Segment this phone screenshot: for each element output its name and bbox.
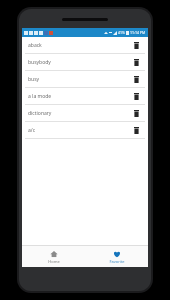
- staticText: aback: [28, 42, 131, 49]
- staticText: a la mode: [28, 93, 131, 100]
- button[interactable]: Delete a la mode: [131, 91, 142, 102]
- button[interactable]: busybody: [22, 54, 148, 70]
- button[interactable]: a la mode: [22, 88, 148, 104]
- staticText: 11:14 PM: [130, 30, 146, 35]
- staticText: Favorite: [109, 259, 125, 264]
- button[interactable]: busy: [22, 71, 148, 87]
- staticText: 41%: [118, 30, 125, 35]
- staticText: busybody: [28, 59, 131, 66]
- button[interactable]: a/c: [22, 122, 148, 138]
- button[interactable]: dictionary: [22, 105, 148, 121]
- button[interactable]: Home: [22, 246, 85, 267]
- staticText: a/c: [28, 127, 131, 134]
- button[interactable]: Delete busybody: [131, 57, 142, 68]
- staticText: dictionary: [28, 110, 131, 117]
- button[interactable]: Delete dictionary: [131, 108, 142, 119]
- staticText: Home: [48, 259, 60, 264]
- button[interactable]: Delete busy: [131, 74, 142, 85]
- staticText: busy: [28, 76, 131, 83]
- button[interactable]: Delete a/c: [131, 125, 142, 136]
- button[interactable]: Favorite: [85, 246, 148, 267]
- button[interactable]: Delete aback: [131, 40, 142, 51]
- button[interactable]: aback: [22, 37, 148, 53]
